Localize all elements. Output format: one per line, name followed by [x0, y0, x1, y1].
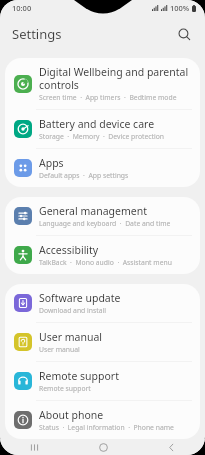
staticText: Screen time · App timers · Bedtime mode	[39, 93, 177, 102]
button[interactable]: Digital Wellbeing and parental controls	[5, 58, 200, 109]
button[interactable]: Search	[171, 21, 197, 47]
staticText: 10:00	[12, 3, 32, 13]
button[interactable]: Back	[137, 439, 205, 455]
staticText: Apps	[39, 156, 64, 170]
staticText: User manual	[39, 345, 80, 354]
button[interactable]: Recent apps	[0, 439, 69, 455]
staticText: General management	[39, 204, 147, 218]
staticText: Software update	[39, 291, 121, 305]
button[interactable]: Remote support	[5, 362, 200, 400]
staticText: Storage · Memory · Device protection	[39, 132, 165, 141]
staticText: TalkBack · Mono audio · Assistant menu	[39, 258, 172, 267]
staticText: Settings	[12, 25, 62, 43]
staticText: Accessibility	[39, 243, 99, 257]
button[interactable]: Software update	[5, 284, 200, 322]
staticText: 100%	[170, 3, 190, 13]
button[interactable]: General management	[5, 197, 200, 235]
staticText: Battery and device care	[39, 117, 155, 131]
button[interactable]: Home	[69, 439, 137, 455]
staticText: Digital Wellbeing and parental controls	[39, 65, 191, 92]
button[interactable]: Battery and device care	[5, 110, 200, 148]
button[interactable]: User manual	[5, 323, 200, 361]
staticText: Remote support	[39, 384, 91, 393]
staticText: Download and install	[39, 306, 107, 315]
staticText: Default apps · App settings	[39, 171, 129, 180]
button[interactable]: About phone	[5, 401, 200, 439]
button[interactable]: Accessibility	[5, 236, 200, 274]
staticText: Remote support	[39, 369, 119, 383]
staticText: About phone	[39, 408, 104, 422]
staticText: Status · Legal information · Phone name	[39, 423, 174, 432]
staticText: Language and keyboard · Date and time	[39, 219, 171, 228]
staticText: User manual	[39, 330, 102, 344]
button[interactable]: Apps	[5, 149, 200, 187]
